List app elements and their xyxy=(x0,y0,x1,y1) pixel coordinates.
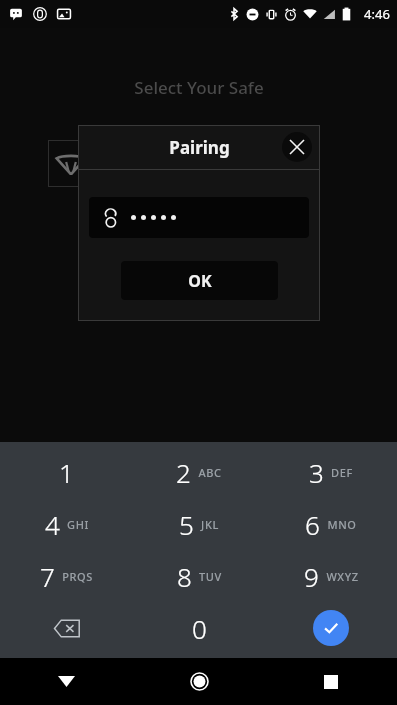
button[interactable] xyxy=(89,197,309,238)
button[interactable]: Confirm xyxy=(313,610,349,646)
staticText: 9 xyxy=(304,559,319,594)
staticText: GHI xyxy=(67,517,89,532)
staticText: 7 xyxy=(40,559,55,594)
staticText: JKL xyxy=(201,517,219,532)
staticText: 1 xyxy=(59,455,74,490)
staticText: 4:46 xyxy=(364,5,390,23)
button[interactable]: 8 xyxy=(133,550,265,602)
staticText: 6 xyxy=(305,507,320,542)
button[interactable]: Recent apps xyxy=(265,658,397,705)
button[interactable]: 5 xyxy=(133,498,265,550)
button[interactable]: 0 xyxy=(133,602,265,654)
staticText: 8 xyxy=(177,559,192,594)
staticText: PRQS xyxy=(62,569,93,584)
button[interactable]: 4 xyxy=(0,498,133,550)
staticText: Select Your Safe xyxy=(134,76,264,99)
button[interactable]: Home xyxy=(133,658,265,705)
staticText: OK xyxy=(188,270,212,292)
staticText: TUV xyxy=(199,569,222,584)
staticText: 0 xyxy=(192,611,207,646)
staticText: WXYZ xyxy=(326,569,359,584)
button[interactable]: 3 xyxy=(265,446,397,498)
button[interactable]: Backspace xyxy=(0,602,133,654)
staticText: Pairing xyxy=(169,136,230,159)
button[interactable]: 6 xyxy=(265,498,397,550)
button[interactable]: 1 xyxy=(0,446,133,498)
staticText: MNO xyxy=(327,517,357,532)
button[interactable]: 9 xyxy=(265,550,397,602)
button[interactable]: Back xyxy=(0,658,133,705)
button[interactable]: OK xyxy=(121,261,278,300)
staticText: 4 xyxy=(45,507,60,542)
button[interactable]: 2 xyxy=(133,446,265,498)
staticText: 5 xyxy=(179,507,194,542)
button[interactable]: Close xyxy=(282,132,312,162)
staticText: 3 xyxy=(309,455,324,490)
staticText: ABC xyxy=(198,465,222,480)
button[interactable] xyxy=(48,140,93,187)
staticText: DEF xyxy=(331,465,353,480)
staticText: 2 xyxy=(176,455,191,490)
button[interactable]: 7 xyxy=(0,550,133,602)
